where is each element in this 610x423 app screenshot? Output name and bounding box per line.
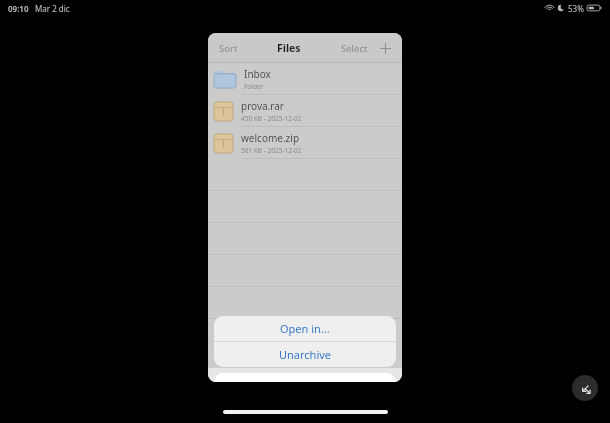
button[interactable]: Close [214,373,396,382]
button[interactable]: Settings [357,372,378,379]
staticText: Mar 2 dic [35,3,70,14]
staticText: 09:10 [8,3,29,14]
button[interactable]: Files [232,372,244,379]
button[interactable]: Add [377,40,393,56]
button[interactable]: Select [339,40,370,57]
button[interactable]: prova.rar [208,95,402,127]
button[interactable]: Inbox [208,63,402,95]
staticText: Settings [357,372,378,379]
staticText: Open in... [280,321,330,336]
staticText: prova.rar [241,99,284,113]
staticText: 561 KB - 2025-12-02 [241,146,302,155]
staticText: Folder [244,82,264,91]
button[interactable]: Open in... [214,316,396,341]
staticText: welcome.zip [241,131,300,145]
staticText: 53% [568,3,584,14]
button[interactable]: Sort [217,40,240,57]
staticText: Files [277,41,301,55]
button[interactable]: Expand window [572,375,598,401]
staticText: Inbox [244,67,271,81]
staticText: Unarchive [279,347,332,362]
button[interactable]: welcome.zip [208,127,402,159]
button[interactable]: Unarchive [214,342,396,367]
staticText: Select [341,42,368,55]
staticText: Files [232,372,244,379]
staticText: Sort [219,42,238,55]
staticText: 450 KB - 2025-12-02 [241,114,302,123]
